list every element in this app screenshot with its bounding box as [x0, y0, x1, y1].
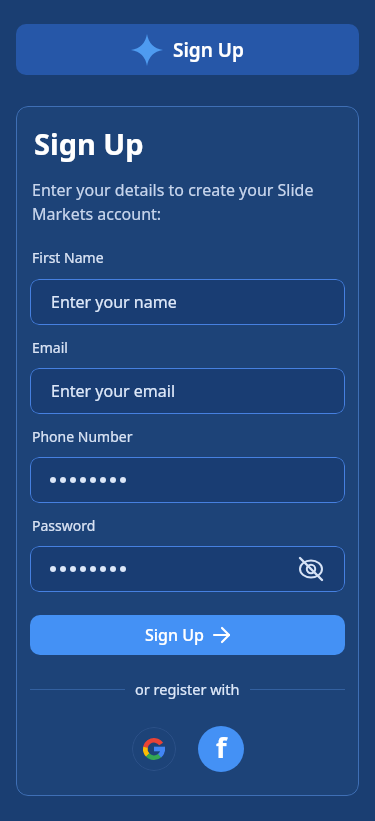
staticText: Phone Number [32, 427, 133, 446]
staticText: Sign Up [145, 624, 204, 646]
button[interactable]: f [198, 726, 244, 772]
button[interactable] [30, 546, 345, 592]
staticText: First Name [32, 248, 104, 267]
button[interactable]: Enter your name [30, 279, 345, 325]
button[interactable]: Sign Up [30, 615, 345, 655]
staticText: Password [32, 516, 96, 535]
staticText: f [216, 729, 227, 766]
staticText: or register with [135, 679, 240, 699]
button[interactable]: Enter your email [30, 368, 345, 414]
staticText: Enter your email [51, 380, 176, 402]
button[interactable] [30, 457, 345, 503]
staticText: Enter your name [51, 291, 177, 313]
staticText: Enter your details to create your Slide … [32, 179, 314, 225]
staticText: Email [32, 338, 68, 357]
button[interactable]: Sign Up [16, 24, 359, 75]
staticText: Sign Up [34, 124, 144, 163]
button[interactable] [132, 727, 176, 771]
staticText: Sign Up [173, 37, 244, 63]
